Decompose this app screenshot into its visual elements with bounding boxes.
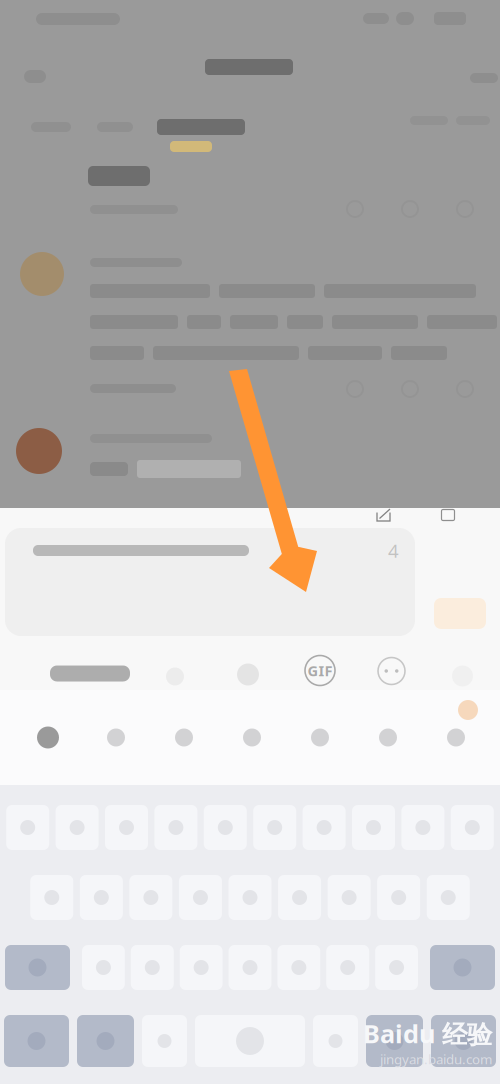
button[interactable]: Key bbox=[278, 875, 321, 920]
button[interactable]: Keyboard tool bbox=[14, 717, 82, 757]
button[interactable]: Tab three bbox=[0, 0, 106, 34]
button[interactable]: Key bbox=[451, 805, 494, 850]
staticText: GIF bbox=[307, 661, 332, 680]
button[interactable]: Replying to bbox=[0, 643, 104, 683]
button[interactable]: Keyboard tool bbox=[218, 717, 286, 757]
staticText: 4 bbox=[388, 538, 399, 563]
button[interactable]: More bbox=[0, 0, 48, 30]
button[interactable]: Key bbox=[80, 875, 123, 920]
button[interactable]: Key bbox=[180, 945, 223, 990]
button[interactable]: Key bbox=[142, 1015, 187, 1067]
button[interactable]: Tab one bbox=[0, 0, 58, 28]
button[interactable]: Key bbox=[129, 875, 172, 920]
button[interactable]: Key bbox=[366, 1015, 423, 1067]
button[interactable]: Key bbox=[427, 875, 470, 920]
button[interactable]: Key bbox=[303, 805, 346, 850]
button[interactable]: Key bbox=[30, 875, 73, 920]
button[interactable]: Key bbox=[4, 1015, 69, 1067]
button[interactable]: Key bbox=[77, 1015, 134, 1067]
button[interactable]: Key bbox=[56, 805, 99, 850]
button[interactable]: Key bbox=[82, 945, 125, 990]
button[interactable]: Keyboard tool bbox=[422, 717, 490, 757]
button[interactable]: Key bbox=[431, 1015, 496, 1067]
button[interactable]: Key bbox=[377, 875, 420, 920]
button[interactable]: Key bbox=[229, 945, 271, 990]
button[interactable]: Key bbox=[328, 875, 371, 920]
button[interactable]: Tab two bbox=[0, 0, 54, 28]
button[interactable]: Key bbox=[179, 875, 222, 920]
button[interactable]: Key bbox=[352, 805, 395, 850]
button[interactable]: Keyboard tool bbox=[354, 717, 422, 757]
button[interactable]: Key bbox=[5, 945, 70, 990]
button[interactable]: Key bbox=[228, 875, 271, 920]
button[interactable]: Key bbox=[277, 945, 320, 990]
staticText: Baidu 经验 bbox=[363, 1016, 492, 1050]
button[interactable]: Keyboard tool bbox=[150, 717, 218, 757]
button[interactable]: Key bbox=[401, 805, 444, 850]
button[interactable]: Keyboard tool bbox=[286, 717, 354, 757]
button[interactable]: Key bbox=[326, 945, 369, 990]
button[interactable]: Key bbox=[105, 805, 148, 850]
button[interactable]: Key bbox=[430, 945, 495, 990]
button[interactable]: Key bbox=[131, 945, 174, 990]
button[interactable]: 4 bbox=[5, 528, 415, 636]
button[interactable]: Share bbox=[376, 508, 392, 522]
button[interactable]: Key bbox=[154, 805, 197, 850]
button[interactable]: Key bbox=[253, 805, 296, 850]
button[interactable]: Window bbox=[438, 508, 458, 522]
staticText: jingyan.baidu.com bbox=[380, 1050, 492, 1068]
button[interactable]: Key bbox=[313, 1015, 358, 1067]
button[interactable]: Key bbox=[195, 1015, 305, 1067]
button[interactable]: Key bbox=[204, 805, 247, 850]
button[interactable]: Key bbox=[375, 945, 418, 990]
button[interactable]: Keyboard tool bbox=[82, 717, 150, 757]
button[interactable]: Key bbox=[6, 805, 49, 850]
